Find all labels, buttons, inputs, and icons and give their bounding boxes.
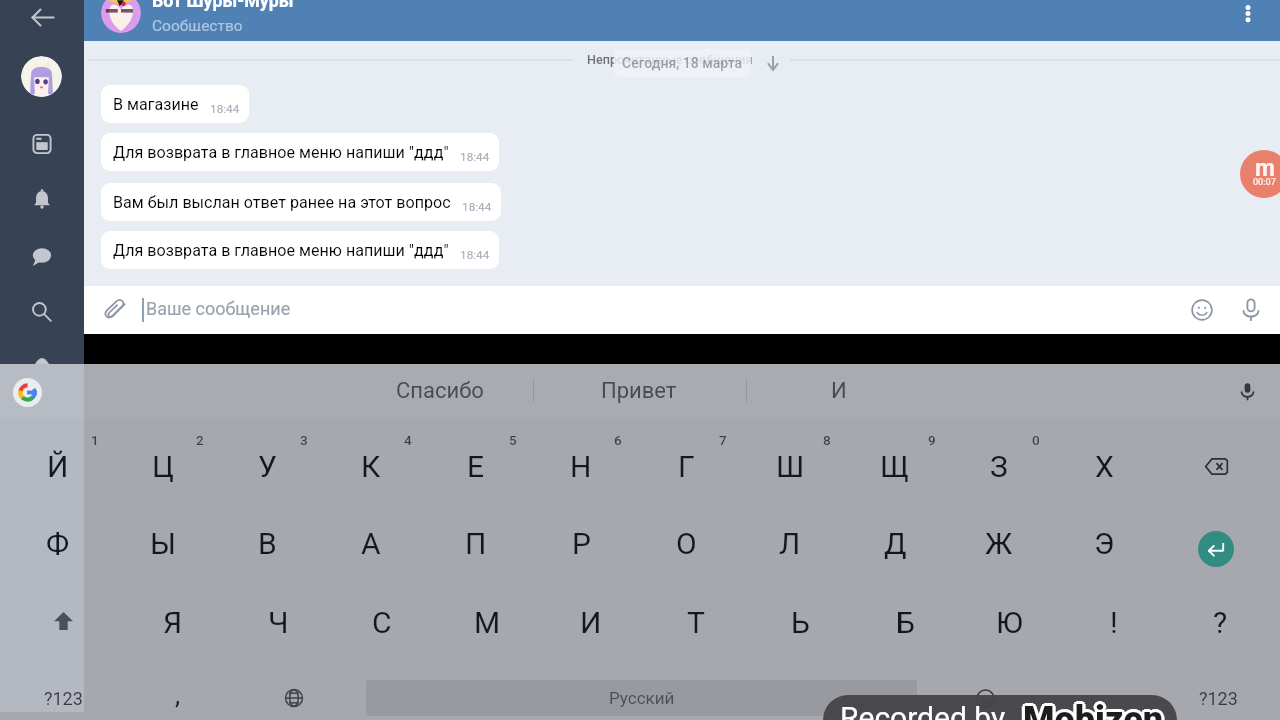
button[interactable]: Для возврата в главное меню напиши "ддд" [101,231,499,269]
staticText: 2 [196,432,204,448]
button[interactable]: ? [1185,590,1255,654]
button[interactable]: Привет [535,364,743,418]
button[interactable]: Screen recorder [1240,150,1280,198]
staticText: Для возврата в главное меню напиши "ддд" [113,241,449,260]
button[interactable]: 1 [91,432,99,448]
staticText: , [175,680,181,710]
button[interactable]: Ю [974,590,1044,654]
button[interactable]: Х [1069,434,1139,498]
staticText: Д [884,526,907,561]
button[interactable]: More options [1226,0,1270,32]
button[interactable]: Ь [765,590,835,654]
button[interactable]: Change keyboard language [272,676,316,720]
button[interactable]: О [651,511,721,575]
button[interactable]: 9 [928,432,936,448]
button[interactable]: Shift [42,600,84,642]
button[interactable]: Сегодня, 18 марта [614,49,751,77]
button[interactable]: Google search [7,372,47,412]
staticText: Сегодня, 18 марта [622,55,743,71]
staticText: В [258,526,277,561]
button[interactable]: ! [1079,590,1149,654]
button[interactable]: 3 [300,432,308,448]
staticText: Е [467,449,485,484]
staticText: Н [570,449,592,484]
button[interactable]: Н [546,434,616,498]
button[interactable]: Бот Шуры-Муры [152,0,294,31]
button[interactable]: Б [870,590,940,654]
button[interactable]: Enter [1198,531,1234,567]
button[interactable]: Voice message [1235,294,1267,326]
button[interactable]: Л [755,511,825,575]
button[interactable]: Русский [366,680,917,716]
button[interactable]: Спасибо [320,364,560,418]
button[interactable]: У [232,434,302,498]
button[interactable]: Ж [964,511,1034,575]
button[interactable]: З [964,434,1034,498]
button[interactable]: Для возврата в главное меню напиши "ддд" [101,133,499,171]
button[interactable]: 4 [404,432,412,448]
button[interactable]: Voice input [1229,373,1265,409]
button[interactable]: 0 [1032,432,1040,448]
button[interactable]: Вам был выслан ответ ранее на этот вопро… [101,183,501,221]
button[interactable]: Я [138,590,208,654]
button[interactable]: Д [860,511,930,575]
button[interactable]: В магазине [101,85,249,123]
button[interactable]: Т [661,590,731,654]
button[interactable]: 2 [196,432,204,448]
button[interactable]: News [22,124,62,164]
staticText: Ж [985,526,1013,561]
button[interactable]: Е [441,434,511,498]
button[interactable]: Й [23,434,93,498]
button[interactable]: 7 [719,432,727,448]
button[interactable]: Emoji [963,676,1007,720]
button[interactable]: Attach file [102,299,126,323]
button[interactable]: Ч [243,590,313,654]
button[interactable]: ?123 [26,676,100,720]
staticText: С [372,605,392,640]
staticText: Р [572,526,591,561]
staticText: 1 [91,432,99,448]
button[interactable]: Period [1064,676,1124,720]
button[interactable]: П [441,511,511,575]
button[interactable]: М [452,590,522,654]
button[interactable]: Profile [21,56,62,97]
staticText: Х [1095,449,1114,484]
button[interactable]: И [556,590,626,654]
staticText: Ваше сообщение [146,298,291,319]
button[interactable]: Search [22,292,62,332]
button[interactable]: Ы [128,511,198,575]
button[interactable]: Chat avatar [101,0,141,33]
button[interactable]: 6 [614,432,622,448]
button[interactable]: 5 [509,432,517,448]
staticText: Бот Шуры-Муры [152,0,294,11]
button[interactable]: Э [1069,511,1139,575]
button[interactable]: И [745,364,933,418]
button[interactable]: Messages [22,236,62,276]
button[interactable]: Г [651,434,721,498]
staticText: Mobizen [1025,697,1166,720]
button[interactable]: Р [546,511,616,575]
button[interactable]: Ц [128,434,198,498]
staticText: О [676,526,697,561]
button[interactable]: С [347,590,417,654]
staticText: 6 [614,432,622,448]
button[interactable]: К [336,434,406,498]
button[interactable]: Emoji [1186,294,1218,326]
button[interactable]: ?123 [1181,676,1255,720]
staticText: 18:44 [460,150,490,164]
button[interactable]: Comma [148,676,208,720]
button[interactable]: Ш [755,434,825,498]
button[interactable]: 8 [823,432,831,448]
button[interactable]: А [336,511,406,575]
button[interactable]: Ф [23,511,93,575]
staticText: Mobizen [1023,699,1164,720]
button[interactable]: Щ [860,434,930,498]
button[interactable]: В [232,511,302,575]
staticText: Русский [609,688,675,708]
staticText: 4 [404,432,412,448]
staticText: 18:44 [462,200,492,214]
button[interactable]: Backspace [1190,440,1242,492]
button[interactable]: Back [22,0,62,37]
button[interactable]: Notifications [22,180,62,220]
staticText: Щ [880,449,910,484]
